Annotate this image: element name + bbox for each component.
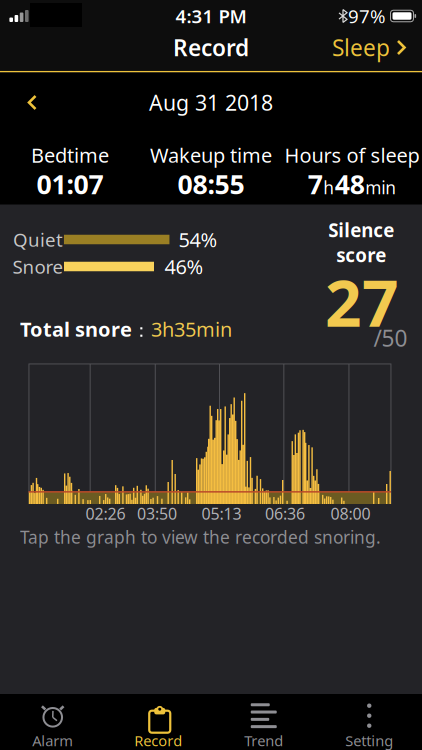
staticText: 01:07 (36, 166, 103, 202)
staticText: Silence score (328, 218, 394, 267)
staticText: 48 (335, 166, 365, 202)
staticText: Sleep (332, 32, 390, 62)
button[interactable]: Setting (324, 694, 414, 750)
staticText: h (323, 176, 334, 199)
staticText: min (365, 176, 396, 199)
staticText: 7 (308, 166, 323, 202)
button[interactable]: Sleep (332, 32, 406, 62)
staticText: Quiet (13, 227, 63, 252)
staticText: Tap the graph to view the recorded snori… (20, 525, 381, 548)
staticText: Alarm (32, 731, 73, 750)
staticText: 05:13 (201, 503, 241, 524)
staticText: Trend (244, 731, 283, 750)
button[interactable]: Trend (219, 694, 309, 750)
staticText: /50 (373, 323, 407, 353)
staticText: 08:55 (177, 166, 244, 202)
staticText: Setting (345, 731, 393, 750)
staticText: Record (134, 731, 182, 750)
staticText: 03:50 (137, 503, 177, 524)
button[interactable] (28, 363, 391, 504)
staticText: Hours of sleep (284, 142, 419, 168)
staticText: Wakeup time (150, 142, 272, 168)
staticText: 97% (348, 4, 386, 28)
staticText: 3h35min (151, 316, 232, 342)
staticText: 08:00 (330, 503, 370, 524)
staticText: 54% (178, 226, 217, 253)
staticText: Record (173, 32, 249, 62)
staticText: 46% (164, 253, 203, 280)
staticText: Total snore (20, 316, 132, 342)
staticText: 27 (325, 259, 399, 344)
button[interactable] (19, 87, 44, 118)
staticText: Snore (12, 254, 63, 279)
button[interactable]: Alarm (8, 694, 98, 750)
staticText: Aug 31 2018 (149, 88, 273, 117)
button[interactable]: Record (113, 694, 203, 750)
staticText: Bedtime (31, 142, 109, 168)
staticText: 02:26 (85, 503, 125, 524)
staticText: 4:31 PM (175, 4, 246, 28)
staticText: 06:36 (265, 503, 305, 524)
staticText: ： (132, 319, 151, 342)
